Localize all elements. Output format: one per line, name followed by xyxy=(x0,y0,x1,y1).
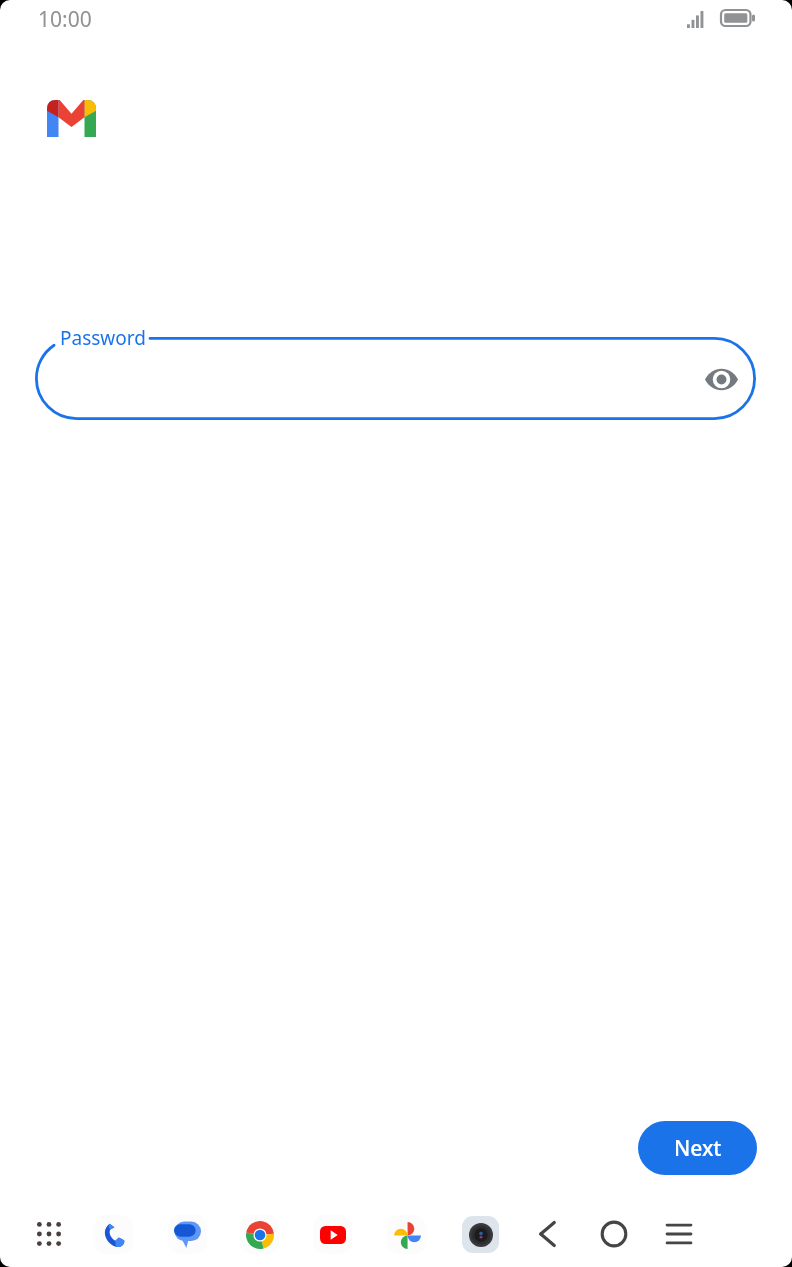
button[interactable]: Chrome xyxy=(233,1208,285,1260)
button[interactable]: Messages xyxy=(161,1208,213,1260)
staticText: Next xyxy=(674,1134,722,1163)
button[interactable]: Back xyxy=(521,1208,573,1260)
button[interactable]: Show password xyxy=(696,354,746,404)
button[interactable]: Recents xyxy=(653,1208,705,1260)
button[interactable]: Phone xyxy=(87,1208,139,1260)
staticText: 10:00 xyxy=(38,5,92,34)
button[interactable]: Apps xyxy=(23,1208,75,1260)
button[interactable]: YouTube xyxy=(306,1208,358,1260)
button[interactable]: Home xyxy=(588,1208,640,1260)
button[interactable]: Camera xyxy=(454,1208,506,1260)
staticText: Password xyxy=(60,325,146,351)
button[interactable]: Photos xyxy=(380,1208,432,1260)
button[interactable]: Next xyxy=(638,1121,757,1175)
button[interactable]: Password xyxy=(35,337,756,420)
